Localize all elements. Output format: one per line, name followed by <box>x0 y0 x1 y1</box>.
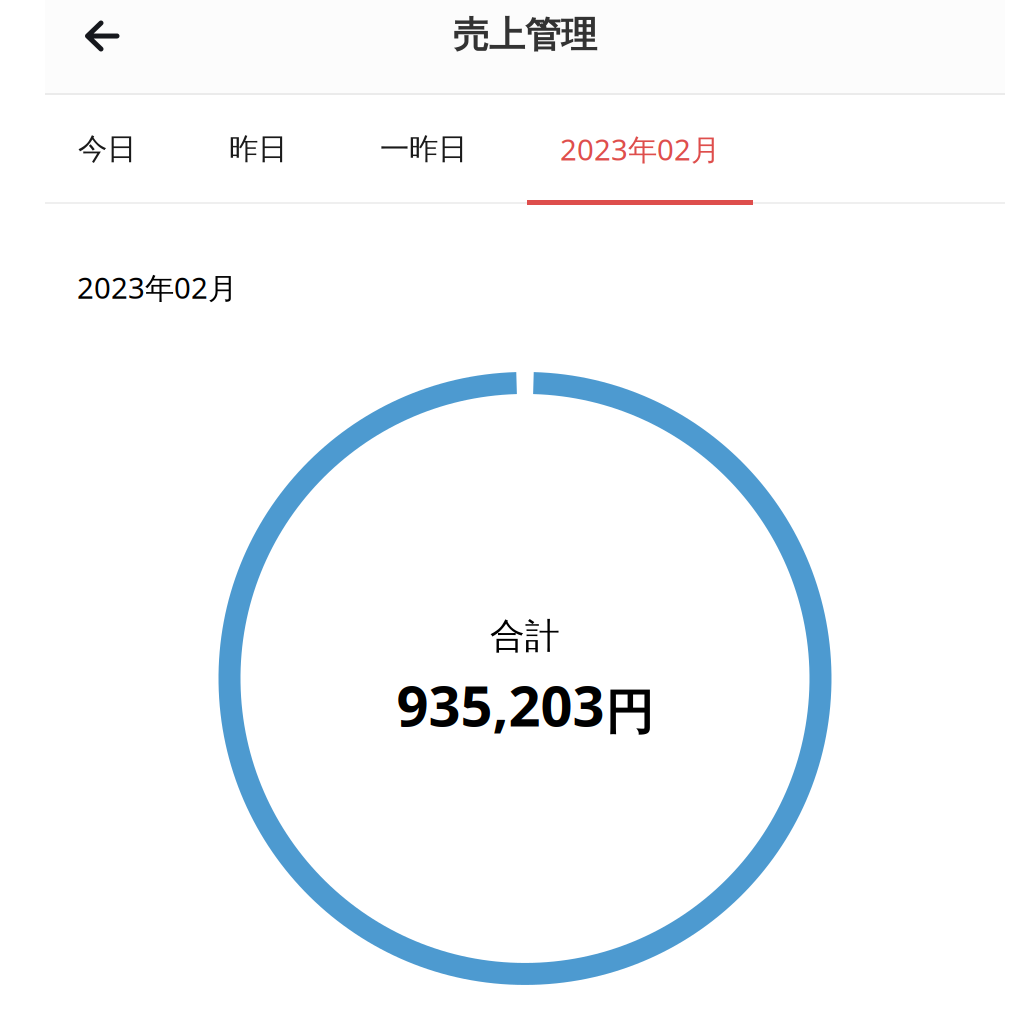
button[interactable]: Back <box>45 0 137 93</box>
staticText: 一昨日 <box>380 131 467 167</box>
staticText: 2023年02月 <box>560 129 720 168</box>
button[interactable]: 昨日 <box>196 95 320 205</box>
staticText: 2023年02月 <box>77 268 237 307</box>
staticText: 935,203 <box>396 668 604 742</box>
staticText: 昨日 <box>229 131 287 167</box>
button[interactable]: 一昨日 <box>347 95 500 205</box>
staticText: 円 <box>605 683 653 742</box>
button[interactable]: 今日 <box>45 95 169 205</box>
button[interactable]: 2023年02月 <box>527 95 753 205</box>
staticText: 合計 <box>490 615 560 658</box>
staticText: 売上管理 <box>453 13 597 57</box>
staticText: 今日 <box>78 131 136 167</box>
